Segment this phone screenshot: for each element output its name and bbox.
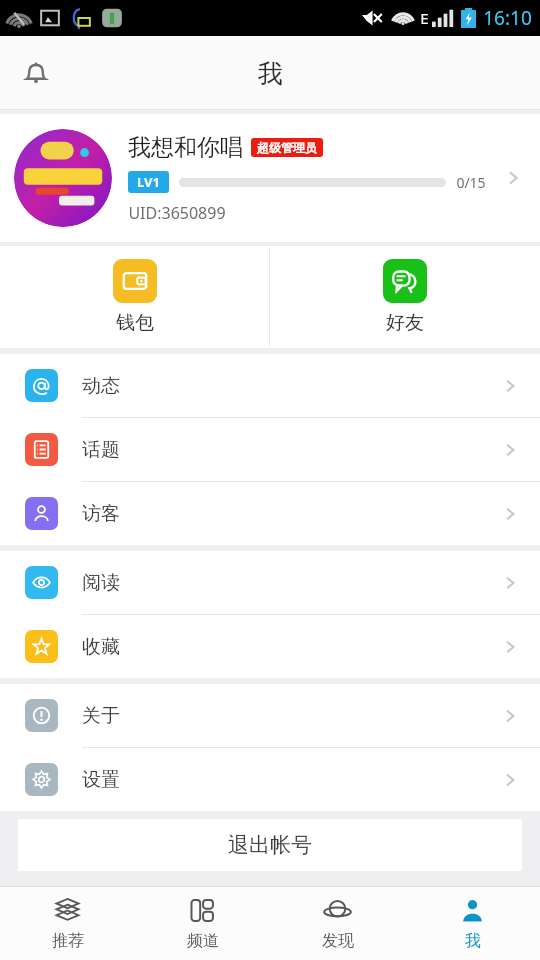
staticText: LV1	[137, 173, 160, 191]
button[interactable]: 关于	[0, 684, 540, 747]
staticText: 阅读	[82, 571, 120, 595]
staticText: 发现	[322, 931, 354, 951]
staticText: 推荐	[52, 931, 84, 951]
staticText: 我想和你唱	[128, 133, 243, 162]
staticText: 钱包	[116, 311, 154, 335]
button[interactable]: 设置	[0, 748, 540, 811]
button[interactable]: 退出帐号	[18, 819, 522, 871]
button[interactable]: 钱包	[0, 246, 269, 348]
button[interactable]: 访客	[0, 482, 540, 545]
button[interactable]: 推荐	[0, 887, 135, 960]
staticText: 频道	[187, 931, 219, 951]
staticText: 设置	[82, 768, 120, 792]
staticText: 0/15	[456, 173, 486, 192]
staticText: UID:3650899	[128, 202, 226, 224]
button[interactable]: 我想和你唱	[0, 114, 540, 242]
staticText: 好友	[386, 311, 424, 335]
staticText: 话题	[82, 438, 120, 462]
button[interactable]: 话题	[0, 418, 540, 481]
button[interactable]: 我	[405, 887, 540, 960]
button[interactable]: Notifications	[10, 47, 62, 99]
staticText: 访客	[82, 502, 120, 526]
button[interactable]: 阅读	[0, 551, 540, 614]
staticText: E	[420, 8, 429, 28]
staticText: 我	[465, 931, 481, 951]
button[interactable]: 收藏	[0, 615, 540, 678]
staticText: 我	[258, 58, 283, 89]
staticText: 动态	[82, 374, 120, 398]
staticText: 关于	[82, 704, 120, 728]
button[interactable]: 动态	[0, 354, 540, 417]
button[interactable]: 发现	[270, 887, 405, 960]
staticText: 收藏	[82, 635, 120, 659]
staticText: 退出帐号	[228, 832, 312, 858]
staticText: 16:10	[483, 5, 532, 31]
staticText: 超级管理员	[257, 140, 317, 155]
button[interactable]: 好友	[270, 246, 540, 348]
button[interactable]: 频道	[135, 887, 270, 960]
